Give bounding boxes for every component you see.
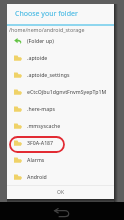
button[interactable]: (Folder up) (7, 32, 114, 49)
staticText: Alarms (27, 156, 45, 163)
staticText: eCtcOjbu1dgnvtFnvmSyepTp1M (27, 88, 107, 95)
button[interactable]: 3F0A-A187 (7, 134, 114, 151)
staticText: (Folder up) (27, 37, 54, 44)
button[interactable]: .aptoide (7, 49, 114, 66)
staticText: OK (57, 189, 65, 196)
button[interactable]: Alarms (7, 151, 114, 168)
staticText: .here-maps (27, 105, 55, 112)
button[interactable]: .mmsyscache (7, 117, 114, 134)
staticText: Choose your folder (15, 9, 78, 19)
staticText: .aptoide (27, 54, 48, 61)
button[interactable]: Back (54, 208, 70, 217)
staticText: .aptoide_settings (27, 71, 70, 78)
button[interactable]: eCtcOjbu1dgnvtFnvmSyepTp1M (7, 83, 114, 100)
button[interactable]: OK (7, 186, 114, 199)
button[interactable]: .here-maps (7, 100, 114, 117)
staticText: .mmsyscache (27, 122, 61, 129)
staticText: /home/nemo/android_storage (9, 26, 85, 33)
staticText: Android (27, 173, 47, 180)
staticText: 3F0A-A187 (27, 139, 54, 146)
button[interactable]: .aptoide_settings (7, 66, 114, 83)
button[interactable]: Android (7, 168, 114, 185)
